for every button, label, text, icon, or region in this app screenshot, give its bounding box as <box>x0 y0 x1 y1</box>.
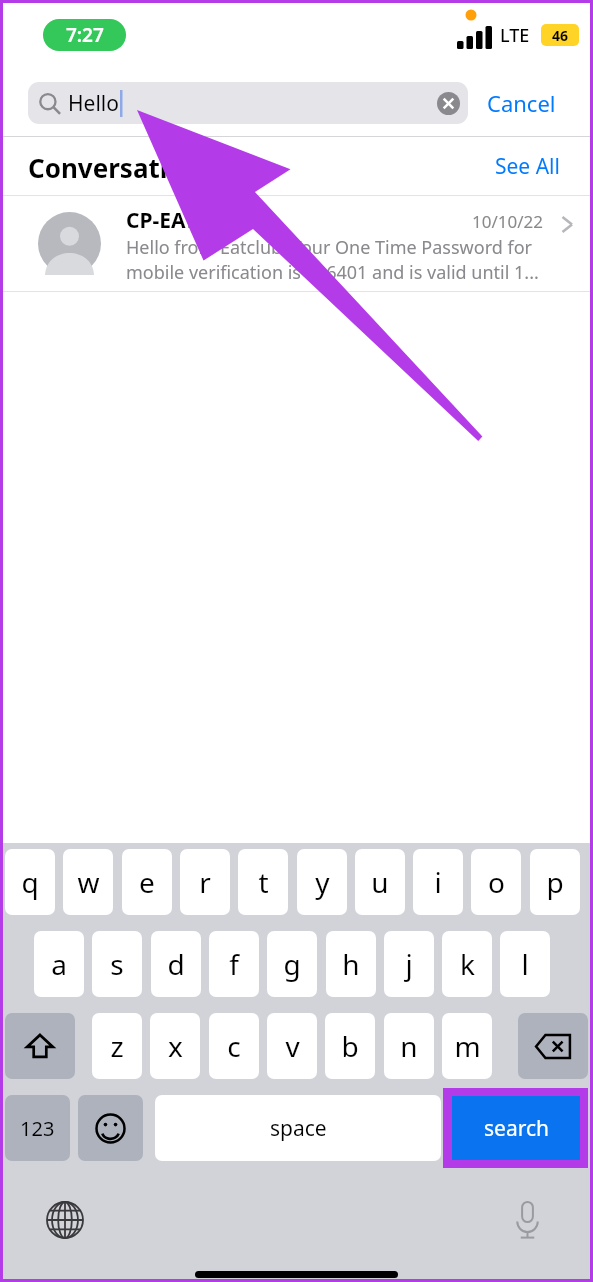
button[interactable]: d <box>151 931 201 997</box>
button[interactable]: j <box>384 931 434 997</box>
staticText: CP-EATCLB <box>126 206 235 235</box>
button[interactable]: u <box>355 849 405 915</box>
staticText: Hello from Eatclub! Your One Time Passwo… <box>126 235 532 260</box>
button[interactable]: Hello <box>28 82 468 124</box>
staticText: mobile verification is 836401 and is val… <box>126 260 539 285</box>
staticText: i <box>434 863 442 901</box>
staticText: space <box>270 1114 327 1143</box>
staticText: search <box>484 1114 549 1143</box>
staticText: p <box>546 863 564 901</box>
staticText: 46 <box>552 26 569 45</box>
button[interactable]: Dictate <box>502 1195 552 1245</box>
staticText: 10/10/22 <box>472 210 543 233</box>
button[interactable]: Emoji <box>78 1095 143 1161</box>
staticText: e <box>139 863 155 901</box>
button[interactable]: b <box>325 1013 375 1079</box>
button[interactable]: Clear text <box>430 85 466 121</box>
staticText: y <box>315 863 330 901</box>
button[interactable]: Numbers <box>5 1095 70 1161</box>
button[interactable]: g <box>267 931 317 997</box>
button[interactable]: s <box>92 931 142 997</box>
staticText: x <box>168 1027 183 1065</box>
staticText: v <box>285 1027 300 1065</box>
staticText: LTE <box>500 23 530 48</box>
button[interactable]: w <box>63 849 113 915</box>
button[interactable]: z <box>92 1013 142 1079</box>
staticText: u <box>371 863 389 901</box>
staticText: o <box>488 863 505 901</box>
staticText: Cancel <box>487 88 556 118</box>
staticText: 7:27 <box>66 22 104 48</box>
staticText: t <box>258 863 269 901</box>
button[interactable]: i <box>413 849 463 915</box>
staticText: g <box>283 945 301 983</box>
button[interactable]: h <box>326 931 376 997</box>
button[interactable]: m <box>442 1013 492 1079</box>
button[interactable]: Change keyboard language <box>40 1195 90 1245</box>
button[interactable]: a <box>34 931 84 997</box>
staticText: l <box>521 945 529 983</box>
staticText: n <box>400 1027 418 1065</box>
button[interactable]: o <box>471 849 521 915</box>
button[interactable]: search <box>452 1096 580 1160</box>
button[interactable]: r <box>180 849 230 915</box>
button[interactable]: k <box>442 931 492 997</box>
staticText: z <box>110 1027 124 1065</box>
button[interactable]: space <box>155 1095 441 1161</box>
button[interactable]: Shift <box>5 1013 75 1079</box>
button[interactable]: v <box>267 1013 317 1079</box>
staticText: f <box>229 945 239 983</box>
button[interactable]: x <box>150 1013 200 1079</box>
button[interactable]: n <box>384 1013 434 1079</box>
button[interactable]: y <box>297 849 347 915</box>
staticText: r <box>199 863 211 901</box>
button[interactable]: Backspace <box>518 1013 588 1079</box>
staticText: c <box>227 1027 241 1065</box>
staticText: s <box>110 945 124 983</box>
staticText: Conversations <box>28 150 214 185</box>
button[interactable]: f <box>209 931 259 997</box>
button[interactable]: p <box>530 849 580 915</box>
staticText: Hello <box>68 89 119 118</box>
staticText: h <box>342 945 360 983</box>
button[interactable]: t <box>238 849 288 915</box>
staticText: See All <box>495 152 560 181</box>
staticText: 123 <box>20 1115 55 1142</box>
button[interactable]: l <box>500 931 550 997</box>
staticText: q <box>21 863 39 901</box>
staticText: b <box>341 1027 359 1065</box>
button[interactable]: c <box>209 1013 259 1079</box>
button[interactable]: e <box>122 849 172 915</box>
button[interactable]: CP-EATCLB <box>0 196 593 291</box>
staticText: a <box>51 945 67 983</box>
button[interactable]: q <box>5 849 55 915</box>
staticText: w <box>77 863 100 901</box>
staticText: d <box>167 945 185 983</box>
staticText: m <box>454 1027 481 1065</box>
staticText: k <box>460 945 475 983</box>
button[interactable]: Cancel <box>478 82 578 124</box>
button[interactable]: See All <box>478 145 580 187</box>
staticText: j <box>405 945 413 983</box>
